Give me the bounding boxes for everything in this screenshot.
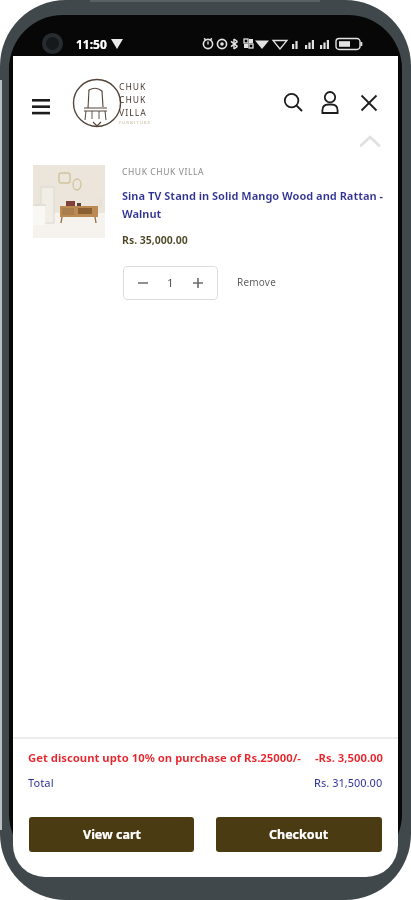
button[interactable] — [355, 89, 383, 117]
staticText: View cart — [83, 826, 141, 843]
button[interactable]: View cart — [29, 817, 194, 852]
button[interactable]: Remove — [232, 269, 280, 295]
button[interactable] — [25, 92, 57, 122]
staticText: CHUK — [119, 94, 147, 106]
staticText: 1 — [167, 275, 174, 291]
button[interactable] — [190, 275, 206, 291]
staticText: Total — [28, 775, 54, 790]
button[interactable]: Checkout — [216, 817, 382, 852]
staticText: CHUK — [119, 81, 147, 93]
staticText: Rs. 31,500.00 — [314, 775, 383, 790]
staticText: 11:50 — [76, 36, 107, 52]
staticText: Walnut — [122, 206, 162, 221]
button[interactable] — [279, 88, 307, 116]
staticText: Get discount upto 10% on purchase of Rs.… — [28, 750, 301, 765]
staticText: Sina TV Stand in Solid Mango Wood and Ra… — [122, 188, 384, 203]
staticText: Remove — [237, 275, 276, 289]
staticText: CHUK CHUK VILLA — [122, 166, 205, 178]
staticText: VILLA — [119, 107, 147, 119]
staticText: Checkout — [269, 826, 329, 843]
staticText: FURNITURE — [119, 120, 151, 126]
staticText: -Rs. 3,500.00 — [315, 750, 383, 764]
staticText: Rs. 35,000.00 — [122, 233, 188, 247]
button[interactable] — [315, 88, 344, 118]
button[interactable] — [135, 275, 151, 291]
